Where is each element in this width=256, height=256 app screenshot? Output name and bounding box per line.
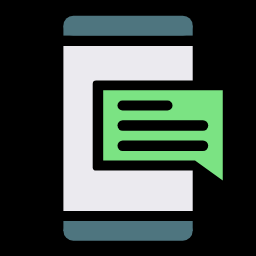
- button[interactable]: Status bar: [63, 16, 192, 36]
- button[interactable]: Open conversation: [93, 81, 233, 171]
- button[interactable]: Navigation bar: [63, 221, 192, 241]
